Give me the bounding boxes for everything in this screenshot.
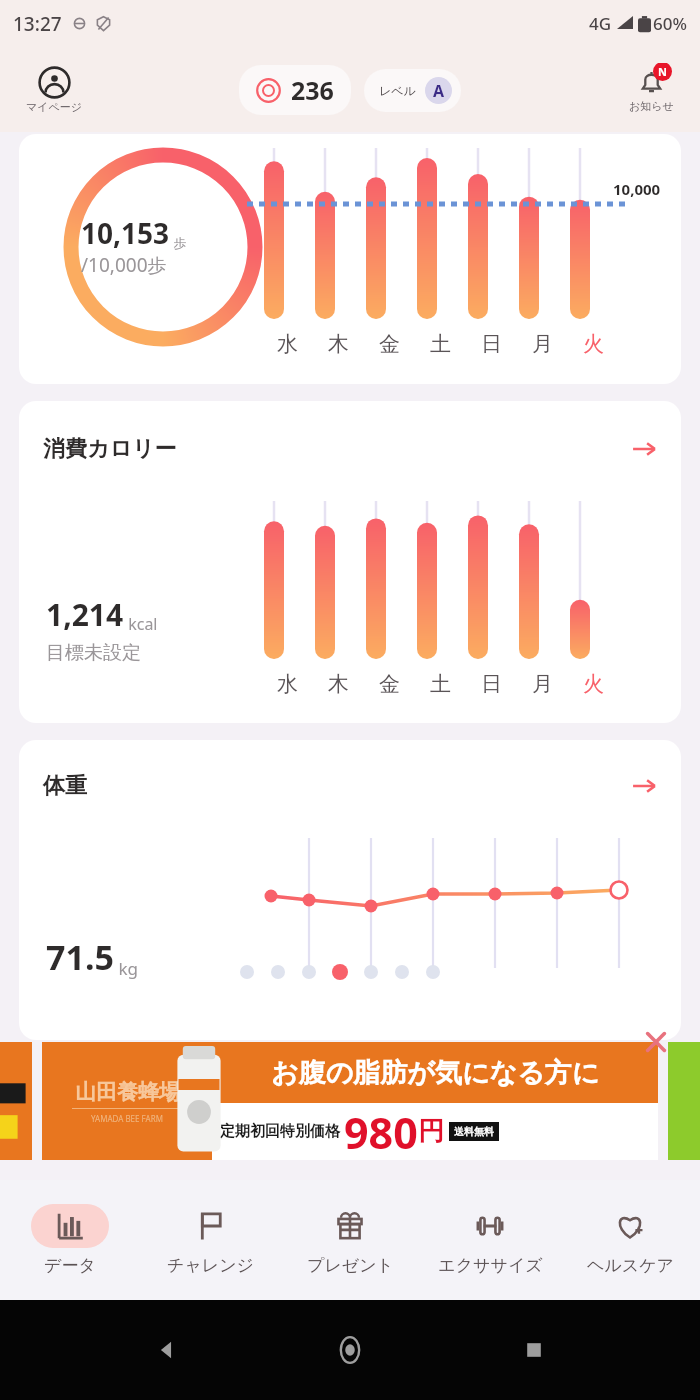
staticText: データ	[44, 1255, 96, 1276]
staticText: プレゼント	[307, 1255, 394, 1276]
staticText: /10,000歩	[81, 252, 167, 278]
staticText: 体重	[43, 772, 87, 800]
staticText: 980	[344, 1103, 418, 1160]
staticText: 水	[277, 331, 298, 357]
staticText: 10,000	[613, 179, 661, 199]
staticText: 円	[418, 1115, 444, 1148]
staticText: 山田養蜂場	[75, 1079, 180, 1105]
button[interactable]: ヘルスケア	[560, 1180, 700, 1300]
staticText: 木	[328, 331, 349, 357]
staticText: 火	[583, 671, 604, 697]
staticText: 日	[481, 331, 502, 357]
staticText: ヘルスケア	[587, 1255, 674, 1276]
button[interactable]: Close ad	[642, 1028, 670, 1056]
staticText: 236	[291, 73, 334, 107]
staticText: お知らせ	[629, 99, 674, 113]
button[interactable]: プレゼント	[280, 1180, 420, 1300]
button[interactable]: Recents	[517, 1333, 551, 1367]
button[interactable]: Home	[333, 1333, 367, 1367]
button[interactable]: Back	[150, 1333, 184, 1367]
button[interactable]: チャレンジ	[140, 1180, 280, 1300]
button[interactable]: 236	[239, 65, 351, 115]
staticText: 日	[481, 671, 502, 697]
staticText: 金	[379, 671, 400, 697]
staticText: 火	[583, 331, 604, 357]
button[interactable]: 10,153	[19, 134, 681, 384]
button[interactable]: 体重	[19, 740, 681, 1040]
staticText: 定期初回特別価格	[220, 1122, 340, 1141]
staticText: YAMADA BEE FARM	[91, 1113, 163, 1124]
staticText: エクササイズ	[438, 1255, 543, 1276]
staticText: 送料無料	[454, 1125, 494, 1138]
staticText: 金	[379, 331, 400, 357]
staticText: 1,214	[46, 594, 124, 635]
button[interactable]: レベル	[364, 69, 461, 112]
other: My Page	[38, 66, 71, 99]
button[interactable]: 消費カロリー	[19, 401, 681, 723]
staticText: レベル	[379, 83, 416, 98]
other: Notifications	[636, 67, 667, 98]
other: Open weight	[631, 773, 657, 799]
staticText: 消費カロリー	[43, 435, 177, 463]
staticText: 10,153	[81, 214, 170, 252]
other: Open calories	[631, 436, 657, 462]
staticText: 13:27	[13, 11, 62, 37]
staticText: 木	[328, 671, 349, 697]
button[interactable]: エクササイズ	[420, 1180, 560, 1300]
staticText: kcal	[124, 613, 158, 635]
button[interactable]: 山田養蜂場	[42, 1042, 658, 1160]
staticText: 月	[532, 671, 553, 697]
staticText: お腹の脂肪が気になる方に	[271, 1056, 600, 1090]
staticText: 4G	[589, 12, 612, 35]
staticText: 歩	[170, 234, 187, 252]
staticText: kg	[114, 957, 138, 980]
button[interactable]: データ	[0, 1180, 140, 1300]
staticText: 目標未設定	[46, 641, 141, 665]
staticText: 月	[532, 331, 553, 357]
staticText: A	[433, 80, 445, 102]
staticText: N	[658, 64, 667, 79]
staticText: 水	[277, 671, 298, 697]
staticText: マイページ	[26, 100, 83, 114]
staticText: 土	[430, 671, 451, 697]
staticText: 71.5	[46, 934, 114, 980]
button[interactable]: My Page	[22, 62, 87, 118]
staticText: チャレンジ	[167, 1255, 254, 1276]
staticText: 60%	[653, 12, 687, 35]
button[interactable]: Notifications	[625, 63, 678, 117]
staticText: 土	[430, 331, 451, 357]
